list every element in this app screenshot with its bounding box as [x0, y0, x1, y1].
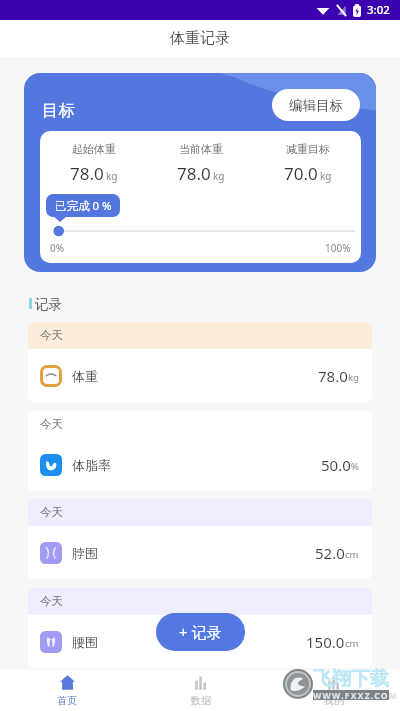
staticText: 78.0 — [318, 366, 348, 386]
staticText: 52.0 — [315, 543, 345, 563]
staticText: 已完成 0 % — [55, 198, 112, 214]
staticText: 数据 — [191, 694, 211, 707]
staticText: 我的 — [324, 694, 344, 707]
staticText: 70.0 — [284, 162, 318, 185]
staticText: 78.0 — [70, 162, 104, 185]
staticText: 目标 — [42, 100, 75, 121]
button[interactable]: 今天 — [28, 411, 372, 491]
staticText: cm — [345, 637, 359, 650]
staticText: 脖围 — [72, 545, 98, 561]
button[interactable]: 今天 — [28, 499, 372, 579]
staticText: 今天 — [40, 505, 63, 519]
staticText: + 记录 — [179, 622, 222, 642]
staticText: kg — [106, 169, 118, 183]
button[interactable]: 今天 — [28, 322, 372, 402]
staticText: 体重记录 — [170, 29, 230, 48]
staticText: % — [351, 460, 359, 473]
staticText: 78.0 — [177, 162, 211, 185]
staticText: 当前体重 — [179, 142, 223, 156]
staticText: 记录 — [35, 296, 62, 312]
staticText: 起始体重 — [72, 142, 116, 156]
staticText: 今天 — [40, 417, 63, 431]
staticText: 150.0 — [306, 632, 345, 652]
staticText: 体重 — [72, 368, 98, 384]
staticText: 3:02 — [367, 2, 390, 18]
staticText: WWW.FXXZ.COM — [313, 690, 399, 702]
staticText: 100% — [325, 241, 351, 255]
staticText: 今天 — [40, 328, 63, 342]
button[interactable]: 我的 — [267, 670, 400, 711]
button[interactable]: 编辑目标 — [272, 89, 360, 121]
staticText: cm — [345, 548, 359, 561]
staticText: 编辑目标 — [289, 97, 343, 114]
staticText: 今天 — [40, 594, 63, 608]
staticText: 0% — [50, 241, 65, 255]
button[interactable]: 今天 — [28, 588, 372, 668]
staticText: kg — [320, 169, 332, 183]
staticText: kg — [348, 371, 359, 384]
staticText: kg — [213, 169, 225, 183]
button[interactable]: + 记录 — [156, 613, 245, 651]
staticText: 飞翔下载 — [313, 667, 389, 691]
staticText: 腰围 — [72, 634, 98, 650]
button[interactable]: 首页 — [0, 670, 134, 711]
staticText: 首页 — [57, 694, 77, 707]
staticText: 减重目标 — [286, 142, 330, 156]
staticText: 50.0 — [321, 455, 351, 475]
staticText: 体脂率 — [72, 457, 111, 473]
button[interactable]: 数据 — [134, 670, 267, 711]
